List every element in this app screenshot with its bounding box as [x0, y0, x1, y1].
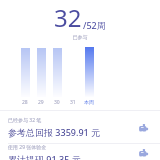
staticText: 已经参与 32 笔 [8, 117, 42, 124]
staticText: 29 [38, 99, 44, 106]
button[interactable]: 已经参与 32 笔 [0, 111, 160, 143]
staticText: 28 [22, 99, 28, 106]
staticText: 30 [54, 99, 60, 106]
staticText: 31 [70, 99, 76, 106]
staticText: 已参与 [0, 34, 160, 40]
button[interactable]: 使用 29 张体验金 [0, 144, 160, 160]
button[interactable]: Cumulative withdrawal details [134, 144, 152, 160]
button[interactable]: Reference total return details [134, 118, 152, 136]
staticText: 使用 29 张体验金 [8, 144, 47, 151]
staticText: /52周 [83, 19, 106, 31]
staticText: 参考总回报 3359.91 元 [8, 126, 101, 138]
staticText: 本周 [84, 99, 94, 105]
staticText: 32 [54, 1, 82, 34]
staticText: 累计提现 91.35 元 [8, 153, 81, 160]
